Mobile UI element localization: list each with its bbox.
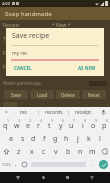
staticText: s — [21, 134, 25, 144]
button[interactable]: g — [50, 132, 61, 145]
staticText: 6 — [62, 118, 65, 123]
staticText: f — [43, 134, 46, 144]
staticText: 4 — [40, 118, 43, 123]
staticText: Delete — [61, 92, 75, 98]
staticText: , — [15, 161, 17, 168]
staticText: Soap handmade — [5, 10, 52, 18]
button[interactable]: Shift — [0, 145, 12, 158]
staticText: p — [102, 121, 107, 131]
button[interactable]: Voice input — [98, 110, 108, 115]
button[interactable]: p — [99, 118, 110, 132]
staticText: c — [42, 147, 46, 157]
button[interactable]: Back — [12, 172, 24, 183]
button[interactable]: AS NEW — [77, 64, 97, 72]
staticText: o — [91, 121, 96, 131]
staticText: records — [45, 109, 63, 116]
staticText: 3 — [29, 118, 32, 123]
button[interactable]: l — [94, 132, 105, 145]
button[interactable]: e — [22, 118, 33, 132]
button[interactable]: Load — [30, 90, 54, 99]
staticText: Load — [37, 92, 48, 98]
button[interactable]: y — [55, 118, 66, 132]
button[interactable]: u — [66, 118, 77, 132]
staticText: v — [54, 147, 58, 157]
button[interactable]: s — [17, 132, 28, 145]
button[interactable]: m — [86, 145, 98, 158]
button[interactable]: Reset — [82, 90, 106, 99]
staticText: l — [99, 134, 101, 144]
staticText: a — [9, 134, 13, 144]
staticText: y — [59, 121, 63, 131]
button[interactable]: CANCEL — [13, 64, 33, 72]
staticText: Save recipe — [12, 31, 50, 41]
staticText: Fa — [3, 64, 9, 71]
button[interactable]: records — [39, 107, 68, 117]
staticText: t — [48, 121, 51, 131]
staticText: Ty — [3, 36, 9, 43]
button[interactable]: More suggestions — [2, 109, 10, 116]
button[interactable]: Enter — [96, 158, 110, 171]
staticText: 2 — [18, 118, 21, 123]
button[interactable]: ?123 — [0, 158, 12, 171]
staticText: x — [30, 147, 34, 157]
button[interactable]: Save — [4, 90, 28, 99]
staticText: 0 — [106, 118, 109, 123]
staticText: g — [53, 134, 58, 144]
button[interactable]: Home — [37, 172, 49, 183]
staticText: 7 — [73, 118, 76, 123]
button[interactable]: c — [38, 145, 50, 158]
button[interactable]: k — [83, 132, 94, 145]
button[interactable]: v — [50, 145, 62, 158]
staticText: q — [3, 121, 8, 131]
staticText: u — [69, 121, 74, 131]
staticText: Water percentage: — [3, 80, 43, 86]
staticText: * New * — [52, 22, 71, 29]
button[interactable]: w — [11, 118, 22, 132]
staticText: Recipe: — [3, 22, 20, 29]
button[interactable]: h — [61, 132, 72, 145]
button[interactable]: j — [72, 132, 83, 145]
button[interactable]: i — [77, 118, 88, 132]
button[interactable]: , — [12, 158, 20, 171]
staticText: receipt — [75, 109, 92, 116]
button[interactable]: n — [74, 145, 86, 158]
staticText: 9 — [95, 118, 98, 123]
button[interactable]: receipt — [69, 107, 98, 117]
button[interactable]: z — [12, 145, 25, 158]
button[interactable]: r — [33, 118, 44, 132]
button[interactable]: x — [25, 145, 38, 158]
staticText: Save — [11, 92, 21, 98]
staticText: . — [91, 161, 93, 168]
button[interactable]: q — [0, 118, 11, 132]
button[interactable]: rec — [10, 107, 38, 117]
button[interactable]: Backspace — [98, 145, 110, 158]
button[interactable]: f — [39, 132, 50, 145]
button[interactable]: d — [28, 132, 39, 145]
staticText: w — [14, 121, 20, 131]
button[interactable]: o — [88, 118, 99, 132]
staticText: h — [64, 134, 69, 144]
button[interactable]: . — [88, 158, 96, 171]
staticText: Reset — [88, 92, 100, 98]
button[interactable]: b — [62, 145, 74, 158]
staticText: 8 — [84, 118, 87, 123]
button[interactable]: Delete — [56, 90, 80, 99]
button[interactable]: Emoji — [20, 158, 29, 171]
staticText: > — [5, 109, 8, 116]
staticText: 5 — [51, 118, 54, 123]
staticText: AS NEW — [78, 65, 96, 71]
staticText: m — [89, 147, 96, 157]
staticText: ?123 — [2, 162, 11, 167]
button[interactable]: a — [5, 132, 17, 145]
staticText: 1 — [7, 118, 10, 123]
staticText: 4:02 — [2, 1, 10, 6]
staticText: CANCEL — [14, 65, 32, 71]
staticText: rec — [20, 109, 28, 116]
button[interactable]: Hide keyboard — [86, 172, 98, 183]
button[interactable]: Recents — [61, 172, 73, 183]
staticText: r — [37, 121, 40, 131]
button[interactable]: t — [44, 118, 55, 132]
staticText: n — [78, 147, 83, 157]
